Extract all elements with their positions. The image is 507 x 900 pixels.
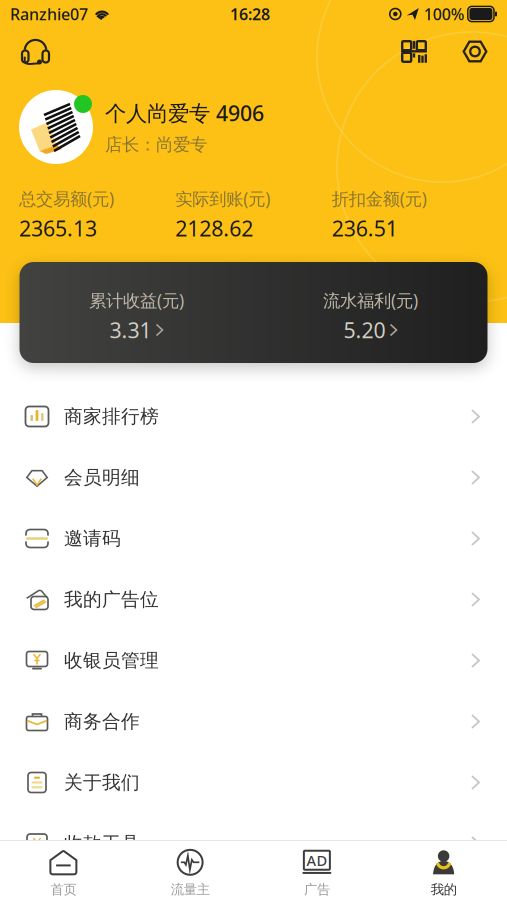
staticText: 邀请码	[64, 527, 121, 550]
button[interactable]: 邀请码	[0, 508, 507, 569]
staticText: 累计收益(元)	[89, 289, 184, 312]
staticText: 我的广告位	[64, 588, 159, 611]
staticText: 5.20	[343, 316, 385, 344]
staticText: 2128.62	[175, 214, 253, 242]
staticText: 个人尚爱专 4906	[105, 99, 264, 127]
button[interactable]: 设置	[436, 32, 494, 71]
staticText: 折扣金额(元)	[332, 187, 427, 210]
button[interactable]: 我的广告位	[0, 569, 507, 630]
button[interactable]: 累计收益(元)	[19, 255, 253, 370]
button[interactable]: 商家排行榜	[0, 386, 507, 447]
staticText: 关于我们	[64, 771, 140, 794]
staticText: 收款工具	[64, 832, 140, 855]
staticText: 16:28	[230, 3, 270, 25]
button[interactable]: 关于我们	[0, 752, 507, 813]
staticText: 店长：尚爱专	[105, 134, 207, 155]
staticText: 2365.13	[19, 214, 97, 242]
button[interactable]: AD	[253, 837, 380, 900]
staticText: 商务合作	[64, 710, 140, 733]
staticText: 236.51	[332, 214, 398, 242]
staticText: 收银员管理	[64, 649, 159, 672]
staticText: 实际到账(元)	[175, 187, 270, 210]
button[interactable]: 客服	[13, 31, 58, 71]
staticText: 首页	[50, 881, 76, 898]
staticText: 100%	[424, 3, 465, 25]
button[interactable]: 首页	[0, 837, 127, 900]
button[interactable]: 商务合作	[0, 691, 507, 752]
staticText: AD	[306, 850, 327, 870]
button[interactable]: 收款工具	[0, 813, 507, 874]
staticText: Ranzhie07	[10, 3, 88, 25]
staticText: 商家排行榜	[64, 405, 159, 428]
staticText: 流量主	[171, 881, 210, 898]
button[interactable]: 会员明细	[0, 447, 507, 508]
button[interactable]: 我的	[380, 837, 507, 900]
staticText: 总交易额(元)	[19, 187, 114, 210]
staticText: 会员明细	[64, 466, 140, 489]
button[interactable]: 流水福利(元)	[253, 255, 487, 370]
button[interactable]: 收银员管理	[0, 630, 507, 691]
staticText: 广告	[304, 881, 330, 898]
button[interactable]: 流量主	[127, 837, 254, 900]
button[interactable]: 扫一扫	[392, 33, 436, 70]
staticText: 流水福利(元)	[323, 289, 418, 312]
staticText: 我的	[431, 881, 457, 898]
staticText: 3.31	[109, 316, 151, 344]
